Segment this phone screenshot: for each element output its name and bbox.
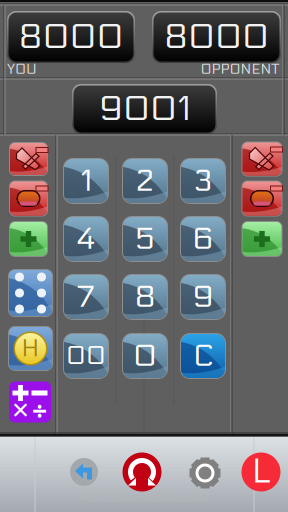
button[interactable]: Roll dice: [8, 269, 53, 317]
staticText: 9: [192, 279, 213, 315]
staticText: YOU: [7, 60, 37, 78]
staticText: ✕: [11, 398, 30, 423]
button[interactable]: Reset life totals: [122, 452, 161, 491]
button[interactable]: Calculator: [9, 381, 51, 422]
staticText: 2: [135, 163, 154, 199]
button[interactable]: 00: [63, 333, 109, 379]
staticText: 1: [80, 163, 92, 199]
button[interactable]: Life log: [241, 452, 280, 491]
staticText: 8000: [164, 16, 269, 57]
button[interactable]: Attack you: [9, 142, 48, 176]
button[interactable]: Attack opponent: [241, 141, 282, 176]
button[interactable]: 3: [180, 158, 226, 204]
button[interactable]: C: [180, 333, 226, 379]
staticText: 9001: [99, 88, 190, 129]
button[interactable]: 5: [122, 216, 168, 262]
button[interactable]: 4: [63, 216, 109, 262]
staticText: TOMBOXCREATIONS.COM: [79, 490, 209, 504]
staticText: ÷: [32, 393, 47, 428]
button[interactable]: Flip coin: [8, 326, 53, 371]
button[interactable]: 8: [122, 274, 168, 320]
staticText: 6: [192, 221, 213, 257]
button[interactable]: 7: [63, 274, 109, 320]
button[interactable]: 6: [180, 216, 226, 262]
button[interactable]: Subtract life from opponent: [241, 180, 282, 216]
button[interactable]: 0: [122, 333, 168, 379]
staticText: 8: [134, 279, 155, 315]
staticText: 4: [76, 221, 96, 257]
button[interactable]: Undo: [69, 457, 99, 487]
button[interactable]: 1: [63, 158, 109, 204]
button[interactable]: Add life to you: [9, 221, 48, 257]
button[interactable]: 2: [122, 158, 168, 204]
staticText: 8000: [18, 16, 123, 57]
staticText: C: [193, 338, 213, 374]
staticText: 0: [133, 338, 157, 374]
staticText: L: [252, 452, 270, 492]
staticText: 00: [66, 341, 106, 371]
staticText: 5: [135, 221, 155, 257]
button[interactable]: Subtract life from you: [9, 180, 48, 216]
staticText: 3: [193, 163, 212, 199]
staticText: OPPONENT: [200, 60, 279, 78]
button[interactable]: Add life to opponent: [241, 221, 282, 257]
button[interactable]: 9: [180, 274, 226, 320]
button[interactable]: Settings: [189, 457, 221, 489]
staticText: H: [21, 334, 39, 363]
staticText: 7: [77, 279, 95, 315]
